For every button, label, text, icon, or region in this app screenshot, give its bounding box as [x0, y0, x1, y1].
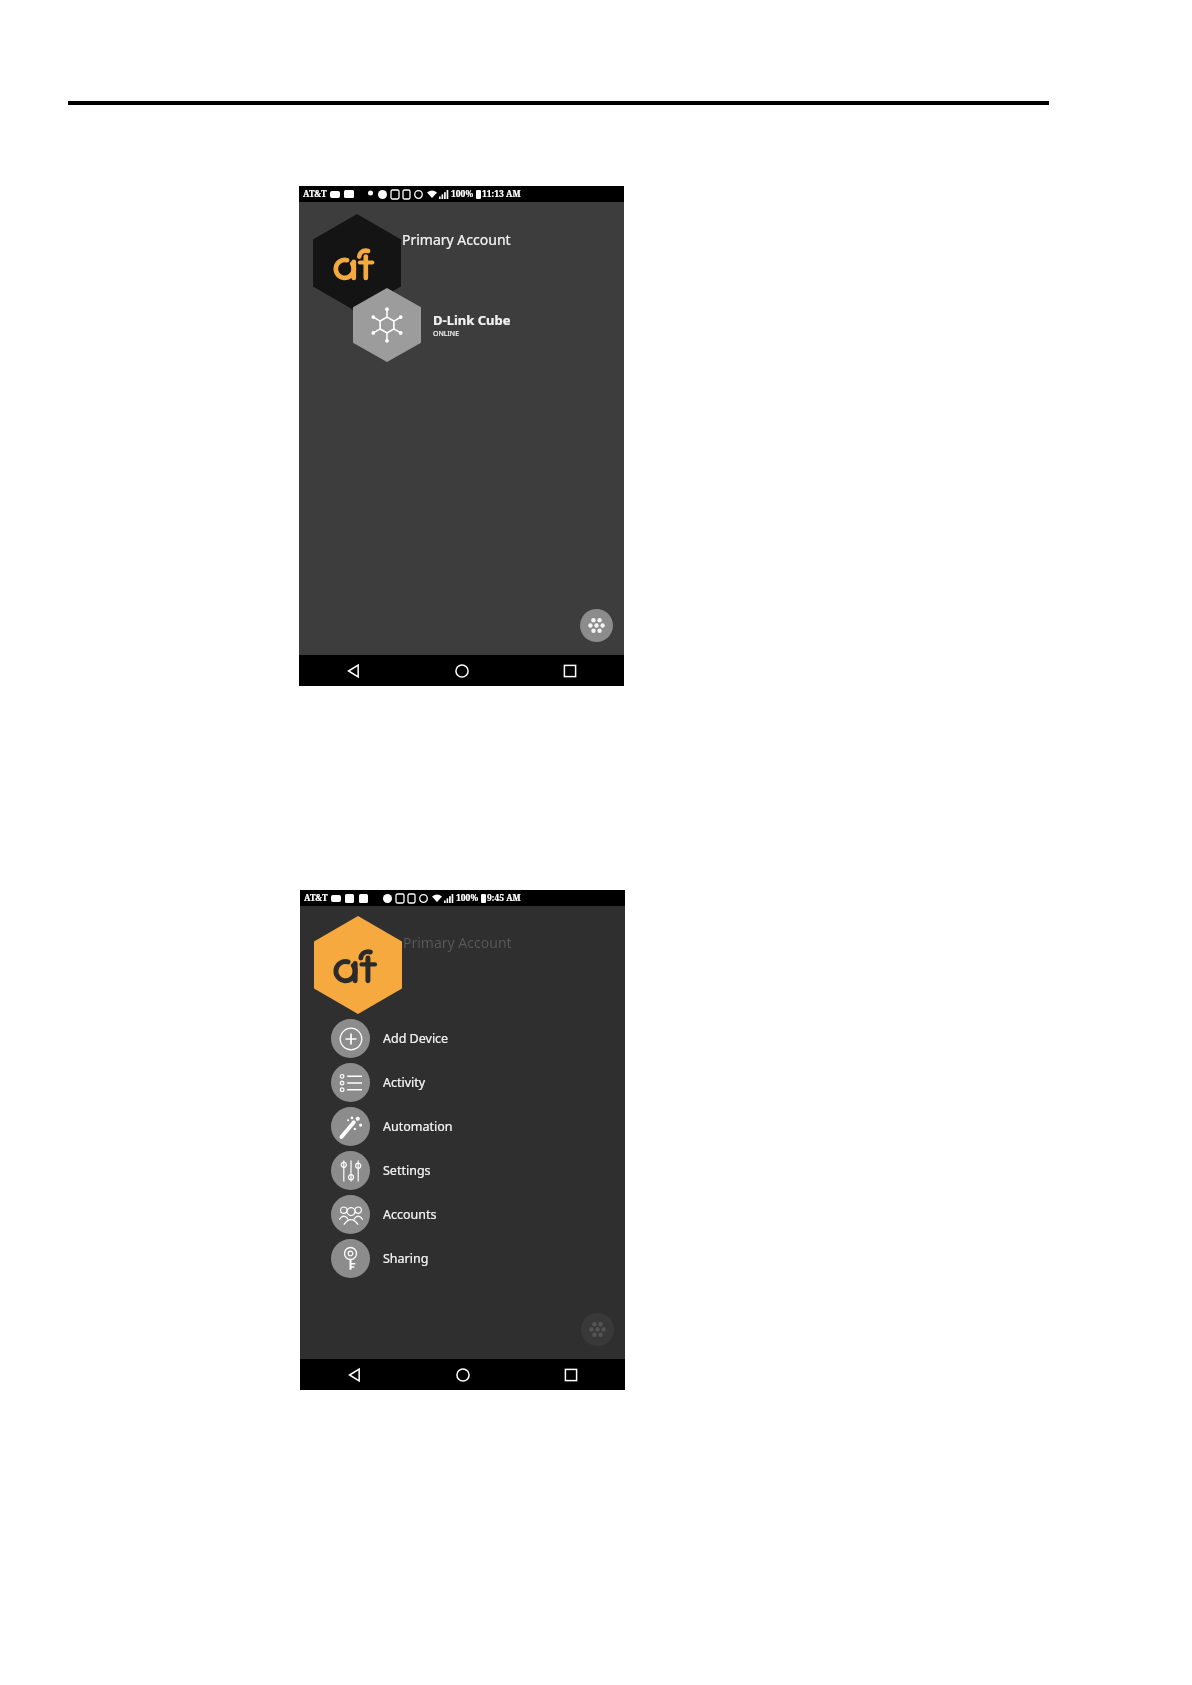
staticText: Automation: [383, 1118, 453, 1135]
button[interactable]: Activity: [331, 1060, 625, 1104]
staticText: 11:13 AM: [482, 188, 521, 200]
staticText: 9:45 AM: [487, 892, 521, 904]
button[interactable]: Back: [299, 655, 408, 686]
staticText: Activity: [383, 1074, 426, 1091]
staticText: 100%: [456, 892, 479, 904]
staticText: Sharing: [383, 1250, 429, 1267]
staticText: Add Device: [383, 1030, 449, 1047]
staticText: Primary Account: [403, 933, 512, 952]
button[interactable]: Back: [300, 1359, 409, 1390]
staticText: AT&T: [303, 188, 327, 200]
staticText: Settings: [383, 1162, 431, 1179]
button[interactable]: [313, 214, 401, 312]
button[interactable]: [314, 916, 402, 1014]
button[interactable]: Home: [408, 655, 516, 686]
button[interactable]: Automation: [331, 1104, 625, 1148]
button[interactable]: Menu: [580, 609, 613, 642]
button[interactable]: Sharing: [331, 1236, 625, 1280]
staticText: AT&T: [304, 892, 328, 904]
button[interactable]: D-Link Cube: [299, 288, 624, 362]
button[interactable]: Accounts: [331, 1192, 625, 1236]
button[interactable]: Recents: [517, 1359, 625, 1390]
button[interactable]: Menu: [581, 1313, 614, 1346]
button[interactable]: Home: [409, 1359, 517, 1390]
staticText: 100%: [451, 188, 474, 200]
button[interactable]: Recents: [516, 655, 624, 686]
staticText: ONLINE: [433, 329, 460, 339]
staticText: Accounts: [383, 1206, 437, 1223]
button[interactable]: Add Device: [331, 1016, 625, 1060]
staticText: D-Link Cube: [433, 311, 511, 329]
button[interactable]: Settings: [331, 1148, 625, 1192]
staticText: Primary Account: [402, 230, 511, 249]
